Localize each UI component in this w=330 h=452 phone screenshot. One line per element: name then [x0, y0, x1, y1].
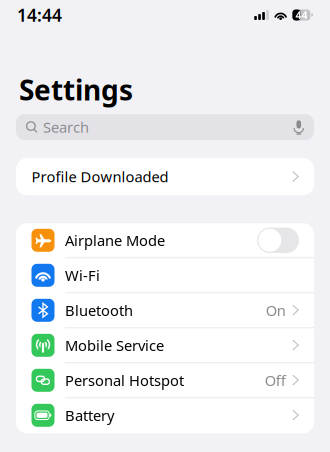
staticText: 14:44 [17, 3, 62, 26]
staticText: Battery [65, 405, 114, 425]
button[interactable]: Profile Downloaded [16, 158, 314, 195]
staticText: Settings [19, 71, 133, 108]
staticText: On [266, 300, 286, 320]
staticText: Off [265, 370, 286, 390]
staticText: 44 [295, 8, 307, 22]
staticText: Mobile Service [65, 335, 164, 355]
staticText: Personal Hotspot [65, 370, 184, 390]
staticText: Wi-Fi [65, 265, 100, 285]
staticText: Profile Downloaded [31, 167, 168, 186]
staticText: Bluetooth [65, 300, 133, 320]
staticText: Search [43, 117, 89, 137]
staticText: Airplane Mode [65, 230, 165, 250]
